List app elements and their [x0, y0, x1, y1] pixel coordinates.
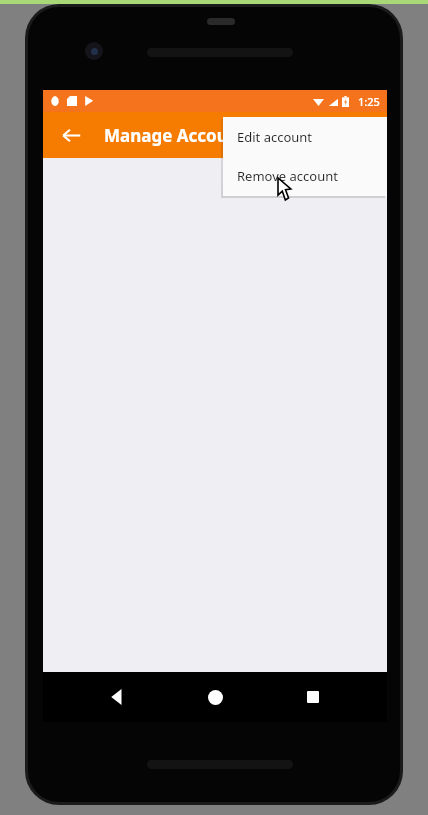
button[interactable]: Recent apps [289, 673, 337, 721]
button[interactable]: Home [191, 673, 239, 721]
staticText: Remove account [237, 167, 338, 185]
button[interactable]: Edit account [223, 117, 387, 156]
staticText: 1:25 [358, 94, 380, 109]
button[interactable]: Back [93, 673, 141, 721]
button[interactable]: Navigate up [51, 115, 91, 155]
staticText: Manage Accounts [104, 124, 255, 147]
button[interactable]: Remove account [223, 156, 387, 195]
staticText: Edit account [237, 128, 313, 146]
